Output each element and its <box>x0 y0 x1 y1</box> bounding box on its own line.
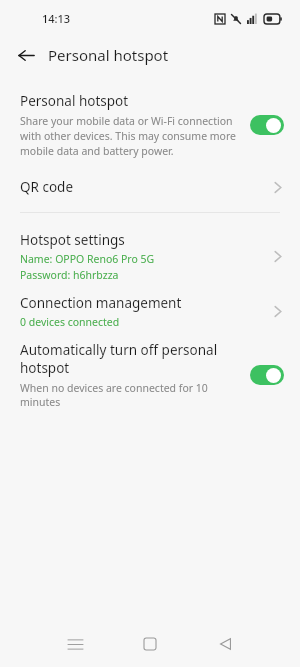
button[interactable]: Hotspot settings <box>0 231 300 282</box>
staticText: When no devices are connected for 10 min… <box>20 381 240 409</box>
staticText: Hotspot settings <box>20 231 125 249</box>
staticText: QR code <box>20 178 274 196</box>
staticText: 14:13 <box>42 11 71 26</box>
button[interactable]: Personal hotspot <box>0 92 300 158</box>
button[interactable]: Back <box>208 627 242 661</box>
button[interactable]: Back <box>10 39 42 71</box>
button[interactable]: QR code <box>0 170 300 204</box>
staticText: 0 devices connected <box>20 315 120 329</box>
button[interactable]: Toggle <box>250 365 284 385</box>
button[interactable]: Home <box>133 627 167 661</box>
staticText: Personal hotspot <box>20 92 129 110</box>
staticText: Automatically turn off personal hotspot <box>20 341 240 377</box>
staticText: Name: OPPO Reno6 Pro 5G <box>20 252 155 266</box>
staticText: Password: h6hrbzza <box>20 268 119 282</box>
button[interactable]: Automatically turn off personal hotspot <box>0 341 300 409</box>
staticText: Connection management <box>20 294 182 312</box>
button[interactable]: Connection management <box>0 294 300 329</box>
staticText: Personal hotspot <box>48 45 169 65</box>
staticText: Share your mobile data or Wi-Fi connecti… <box>20 114 240 158</box>
button[interactable]: Toggle <box>250 115 284 135</box>
button[interactable]: Recent apps <box>58 627 92 661</box>
